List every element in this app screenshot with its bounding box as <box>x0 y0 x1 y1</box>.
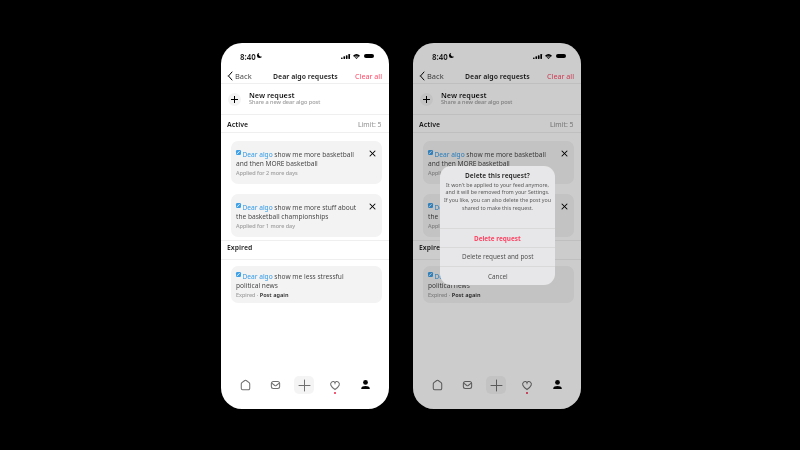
staticText: New request <box>441 90 487 100</box>
button[interactable]: Dear algo show me more stuff about the b… <box>231 194 382 237</box>
button[interactable]: New request <box>413 84 581 114</box>
button[interactable]: Create <box>486 376 506 394</box>
staticText: Expired <box>227 243 253 252</box>
button[interactable]: Messages <box>458 376 476 394</box>
staticText: Cancel <box>488 272 508 281</box>
button[interactable]: Messages <box>266 376 284 394</box>
staticText: Dear algo show me less stressful politic… <box>236 270 361 290</box>
button[interactable]: Dear algo show me less stressful politic… <box>231 266 382 303</box>
staticText: Active <box>227 120 249 129</box>
staticText: Dear algo requests <box>273 72 338 81</box>
button[interactable]: Home <box>428 376 446 394</box>
staticText: 8:40 <box>240 52 256 63</box>
button[interactable]: Back <box>221 68 258 84</box>
button[interactable]: Clear all <box>539 68 581 84</box>
button[interactable]: Home <box>236 376 254 394</box>
staticText: Delete request <box>474 234 521 243</box>
staticText: Expired <box>419 243 445 252</box>
staticText: Expired · Post again <box>428 291 481 298</box>
button[interactable]: Delete request <box>557 146 572 161</box>
staticText: Share a new dear algo post <box>441 98 513 106</box>
button[interactable]: Delete request and post <box>440 247 555 265</box>
button[interactable]: Delete request <box>365 199 380 214</box>
button[interactable]: Dear algo show me more basketball and th… <box>231 141 382 184</box>
button[interactable]: Cancel <box>440 266 555 285</box>
button[interactable]: Activity <box>326 376 344 394</box>
staticText: Limit: 5 <box>358 120 382 129</box>
staticText: Dear algo show me more stuff about the b… <box>428 201 553 221</box>
button[interactable]: Delete request <box>557 199 572 214</box>
staticText: Expired · Post again <box>236 291 289 298</box>
staticText: Dear algo show me more basketball and th… <box>236 148 361 168</box>
staticText: Active <box>419 120 441 129</box>
button[interactable]: Dear algo show me more stuff about the b… <box>423 194 574 237</box>
staticText: Dear algo show me less stressful politic… <box>428 270 553 290</box>
staticText: Delete this request? <box>440 171 555 180</box>
button[interactable]: Dear algo show me more basketball and th… <box>423 141 574 184</box>
staticText: Applied for 2 more days <box>428 169 490 176</box>
staticText: Dear algo show me more basketball and th… <box>428 148 553 168</box>
button[interactable]: Dear algo show me less stressful politic… <box>423 266 574 303</box>
staticText: Back <box>235 71 252 81</box>
button[interactable]: Profile <box>548 375 566 393</box>
button[interactable]: Delete request <box>440 228 555 248</box>
staticText: Applied for 2 more days <box>236 169 298 176</box>
staticText: Back <box>427 71 444 81</box>
staticText: New request <box>249 90 295 100</box>
staticText: Dear algo show me more stuff about the b… <box>236 201 361 221</box>
staticText: Delete request and post <box>462 252 534 261</box>
staticText: Limit: 5 <box>550 120 574 129</box>
staticText: 8:40 <box>432 52 448 63</box>
staticText: It won't be applied to your feed anymore… <box>444 181 551 212</box>
button[interactable]: Profile <box>356 375 374 393</box>
button[interactable]: Back <box>413 68 450 84</box>
button[interactable]: Delete request <box>365 146 380 161</box>
staticText: Applied for 1 more day <box>428 222 487 229</box>
button[interactable]: Create <box>294 376 314 394</box>
staticText: Share a new dear algo post <box>249 98 321 106</box>
staticText: Dear algo requests <box>465 72 530 81</box>
button[interactable]: Clear all <box>347 68 389 84</box>
button[interactable]: New request <box>221 84 389 114</box>
staticText: Applied for 1 more day <box>236 222 295 229</box>
button[interactable]: Activity <box>518 376 536 394</box>
